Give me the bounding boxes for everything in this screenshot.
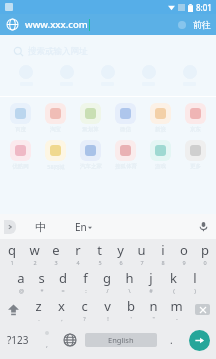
button[interactable]: 中	[20, 214, 60, 239]
staticText: h	[125, 269, 134, 287]
button[interactable]	[46, 65, 87, 86]
staticText: f	[83, 269, 88, 287]
button[interactable]: Enter	[182, 323, 216, 357]
button[interactable]: o	[173, 239, 194, 267]
button[interactable]: b	[119, 295, 142, 323]
button[interactable]: q	[1, 239, 23, 267]
button[interactable]: 游戏	[143, 140, 178, 170]
staticText: 游戏	[155, 163, 166, 170]
button[interactable]: u	[131, 239, 152, 267]
button[interactable]: 百度	[3, 103, 38, 133]
staticText: 7	[140, 259, 144, 266]
staticText: 1	[10, 259, 14, 266]
button[interactable]: d	[52, 267, 74, 295]
button[interactable]: 淘宝	[38, 103, 73, 133]
button[interactable]: z	[26, 295, 50, 323]
button[interactable]: r	[67, 239, 89, 267]
button[interactable]: Voice input	[190, 214, 216, 239]
staticText: i	[161, 241, 165, 259]
staticText: e	[52, 241, 60, 259]
staticText: a	[17, 269, 25, 287]
button[interactable]	[128, 65, 169, 86]
staticText: ,	[46, 340, 48, 350]
button[interactable]: 搜狐体育	[108, 140, 143, 170]
staticText: 8	[161, 259, 165, 266]
button[interactable]	[6, 65, 46, 86]
staticText: 新浪	[155, 126, 166, 133]
button[interactable]: ,	[36, 323, 58, 357]
button[interactable]: Expand	[0, 214, 20, 239]
staticText: /	[106, 287, 109, 294]
staticText: 4	[76, 259, 80, 266]
button[interactable]: i	[152, 239, 173, 267]
staticText: .	[170, 333, 173, 347]
button[interactable]: Site info	[5, 17, 20, 32]
button[interactable]: ?123	[0, 323, 36, 357]
staticText: 0	[203, 259, 207, 266]
button[interactable]: e	[45, 239, 67, 267]
button[interactable]: n	[142, 295, 165, 323]
button[interactable]: 京东	[178, 103, 213, 133]
button[interactable]: f	[74, 267, 96, 295]
staticText: -	[176, 315, 178, 322]
button[interactable]: 汽车之家	[73, 140, 108, 170]
button[interactable]: j	[140, 267, 162, 295]
button[interactable]: 聚划算	[73, 103, 108, 133]
button[interactable]: h	[118, 267, 140, 295]
button[interactable]: g	[96, 267, 118, 295]
button[interactable]: .	[160, 323, 182, 357]
button[interactable]: c	[73, 295, 96, 323]
staticText: 优酷网	[12, 163, 29, 170]
button[interactable]: Shift	[0, 295, 26, 323]
button[interactable]: 优酷网	[3, 140, 38, 170]
staticText: w	[29, 241, 40, 259]
button[interactable]: English	[85, 333, 157, 347]
staticText: 微信	[120, 126, 131, 133]
button[interactable]: En	[60, 214, 106, 239]
staticText: d	[59, 269, 67, 287]
staticText: "	[152, 315, 155, 322]
button[interactable]: 新浪	[143, 103, 178, 133]
staticText: y	[117, 241, 124, 259]
button[interactable]: 搜索或输入网址	[14, 41, 202, 61]
button[interactable]: y	[110, 239, 131, 267]
button[interactable]: t	[89, 239, 110, 267]
button[interactable]: www.xxx.com	[25, 14, 175, 35]
staticText: (	[173, 287, 175, 294]
staticText: 6	[119, 259, 123, 266]
staticText: b	[127, 297, 135, 315]
button[interactable]: v	[96, 295, 119, 323]
staticText: 2	[33, 259, 37, 266]
button[interactable]	[87, 65, 128, 86]
staticText: s	[38, 269, 45, 287]
staticText: '	[130, 315, 132, 322]
button[interactable]	[169, 65, 210, 86]
button[interactable]: 微信	[108, 103, 143, 133]
staticText: 聚划算	[82, 126, 99, 133]
button[interactable]: s	[31, 267, 52, 295]
button[interactable]: a	[10, 267, 31, 295]
staticText: )	[194, 287, 196, 294]
staticText: 淘宝	[50, 126, 61, 133]
button[interactable]: x	[50, 295, 73, 323]
staticText: 5	[98, 259, 102, 266]
staticText: x	[58, 297, 65, 315]
staticText: .	[38, 315, 40, 322]
button[interactable]: 更多	[178, 140, 213, 170]
button[interactable]: 58同城	[38, 140, 73, 171]
button[interactable]: w	[23, 239, 45, 267]
button[interactable]: m	[165, 295, 188, 323]
staticText: n	[149, 297, 158, 315]
button[interactable]: Clear	[175, 18, 189, 32]
button[interactable]: Backspace	[188, 295, 216, 323]
button[interactable]: p	[194, 239, 215, 267]
button[interactable]: k	[162, 267, 184, 295]
staticText: t	[97, 241, 102, 259]
button[interactable]: Change language	[58, 323, 82, 357]
button[interactable]: 前往	[193, 14, 211, 35]
staticText: g	[103, 269, 111, 287]
staticText: @	[19, 287, 24, 294]
button[interactable]: l	[184, 267, 206, 295]
staticText: 前往	[193, 19, 211, 30]
staticText: :	[85, 287, 87, 294]
